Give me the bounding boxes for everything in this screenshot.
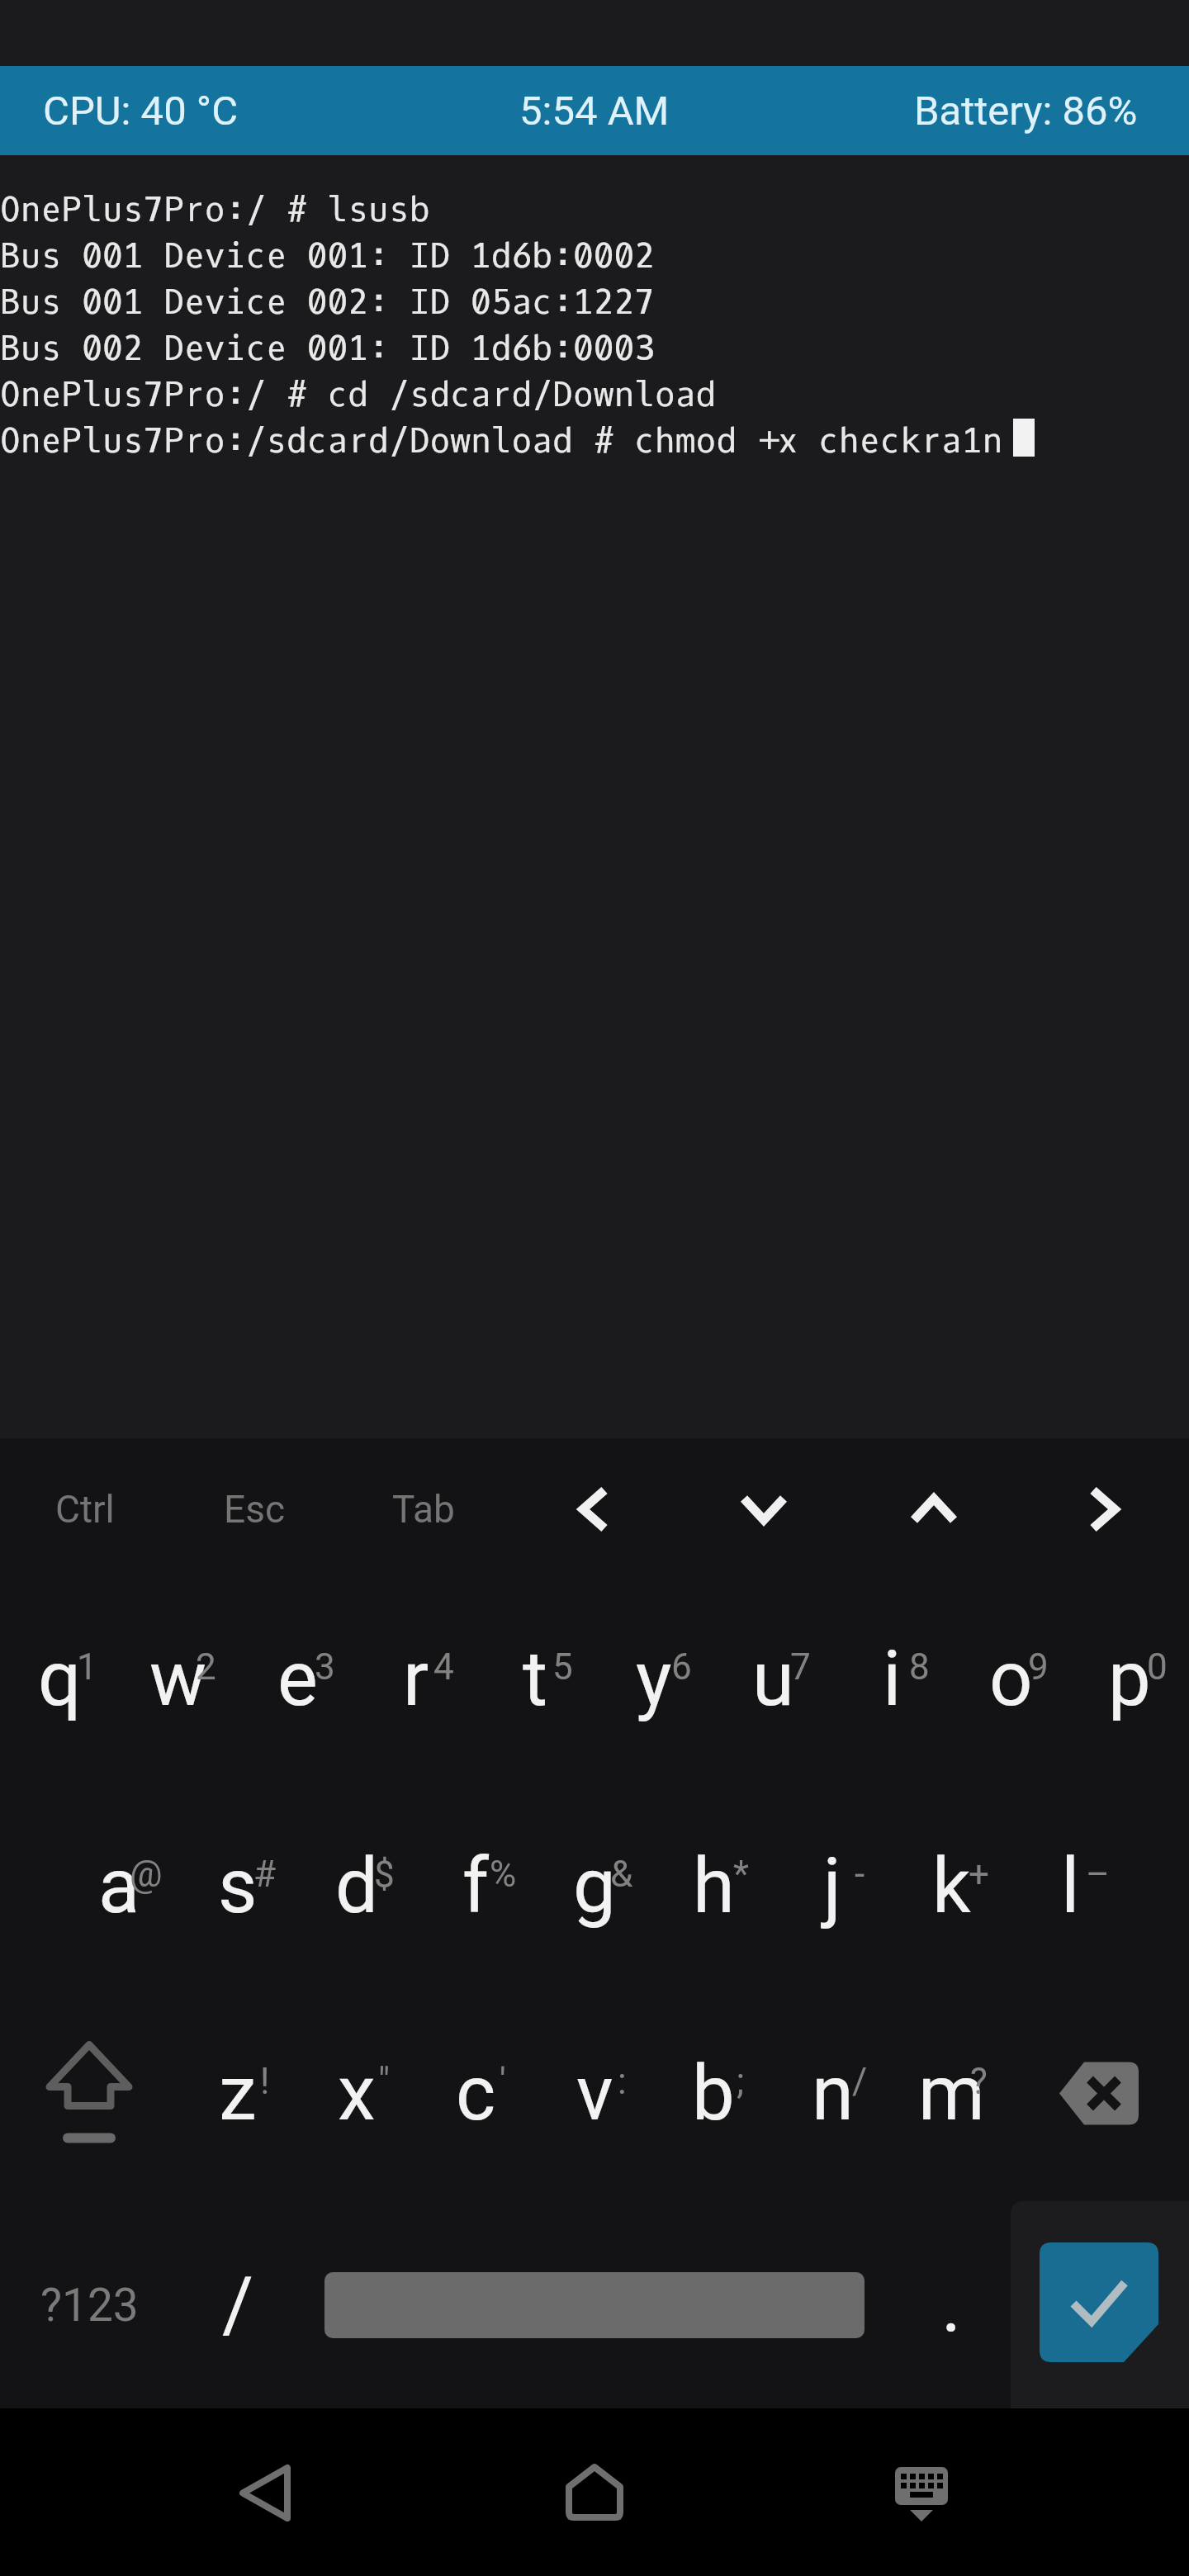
- button[interactable]: p: [1070, 1579, 1189, 1787]
- staticText: m: [918, 2049, 985, 2138]
- button[interactable]: o: [951, 1579, 1070, 1787]
- staticText: ': [500, 2060, 506, 2103]
- staticText: d: [335, 1842, 378, 1931]
- staticText: /: [852, 2060, 868, 2103]
- button[interactable]: q: [0, 1579, 119, 1787]
- staticText: i: [883, 1635, 902, 1724]
- button[interactable]: k: [892, 1787, 1011, 1994]
- staticText: a: [98, 1842, 140, 1931]
- button[interactable]: Ctrl: [0, 1438, 169, 1579]
- staticText: o: [989, 1635, 1033, 1724]
- staticText: 2: [196, 1646, 216, 1688]
- button[interactable]: [1011, 1994, 1189, 2201]
- button[interactable]: [1019, 1438, 1189, 1579]
- button[interactable]: n: [773, 1994, 892, 2201]
- staticText: Tab: [392, 1487, 455, 1532]
- staticText: b: [692, 2049, 735, 2138]
- button[interactable]: h: [654, 1787, 773, 1994]
- staticText: !: [260, 2060, 270, 2103]
- staticText: &: [610, 1853, 633, 1896]
- button[interactable]: [297, 2201, 892, 2408]
- staticText: j: [823, 1842, 842, 1931]
- staticText: l: [1061, 1842, 1080, 1931]
- staticText: s: [218, 1842, 258, 1931]
- staticText: h: [693, 1842, 735, 1931]
- button[interactable]: /: [178, 2201, 297, 2408]
- button[interactable]: b: [654, 1994, 773, 2201]
- button[interactable]: j: [773, 1787, 892, 1994]
- staticText: ?: [970, 2060, 988, 2103]
- staticText: ?123: [40, 2279, 139, 2332]
- button[interactable]: x: [297, 1994, 416, 2201]
- staticText: Esc: [224, 1487, 285, 1532]
- button[interactable]: [893, 2464, 951, 2522]
- staticText: 3: [315, 1646, 335, 1688]
- button[interactable]: u: [713, 1579, 832, 1787]
- button[interactable]: d: [297, 1787, 416, 1994]
- button[interactable]: s: [178, 1787, 297, 1994]
- button[interactable]: Esc: [169, 1438, 339, 1579]
- staticText: :: [618, 2060, 627, 2103]
- staticText: 9: [1028, 1646, 1049, 1688]
- staticText: –: [1086, 1853, 1110, 1896]
- staticText: #: [253, 1853, 277, 1896]
- button[interactable]: e: [238, 1579, 357, 1787]
- staticText: -: [855, 1853, 865, 1896]
- button[interactable]: y: [594, 1579, 713, 1787]
- button[interactable]: m: [892, 1994, 1011, 2201]
- button[interactable]: c: [416, 1994, 535, 2201]
- staticText: u: [752, 1635, 794, 1724]
- button[interactable]: [236, 2464, 294, 2522]
- staticText: z: [219, 2049, 257, 2138]
- staticText: /: [222, 2261, 253, 2350]
- staticText: @: [130, 1853, 163, 1896]
- button[interactable]: [1011, 2201, 1189, 2408]
- staticText: +: [969, 1853, 989, 1896]
- button[interactable]: [679, 1438, 849, 1579]
- button[interactable]: [0, 1994, 178, 2201]
- staticText: f: [462, 1842, 489, 1931]
- button[interactable]: z: [178, 1994, 297, 2201]
- button[interactable]: a: [59, 1787, 178, 1994]
- button[interactable]: i: [832, 1579, 951, 1787]
- button[interactable]: v: [535, 1994, 654, 2201]
- button[interactable]: CPU: 40 °C: [0, 66, 1189, 155]
- staticText: Ctrl: [55, 1487, 115, 1532]
- button[interactable]: f: [416, 1787, 535, 1994]
- staticText: c: [456, 2049, 496, 2138]
- staticText: k: [932, 1842, 971, 1931]
- staticText: 0: [1147, 1646, 1168, 1688]
- staticText: 6: [671, 1646, 692, 1688]
- button[interactable]: r: [357, 1579, 476, 1787]
- staticText: r: [403, 1635, 429, 1724]
- button[interactable]: t: [476, 1579, 594, 1787]
- button[interactable]: [849, 1438, 1019, 1579]
- staticText: x: [338, 2049, 376, 2138]
- staticText: p: [1108, 1635, 1151, 1724]
- button[interactable]: [509, 1438, 679, 1579]
- staticText: v: [576, 2049, 613, 2138]
- staticText: 5: [552, 1646, 573, 1688]
- staticText: 7: [790, 1646, 811, 1688]
- staticText: $: [374, 1853, 395, 1896]
- button[interactable]: Tab: [339, 1438, 509, 1579]
- staticText: q: [38, 1635, 82, 1724]
- button[interactable]: [566, 2464, 623, 2522]
- button[interactable]: l: [1011, 1787, 1130, 1994]
- staticText: CPU: 40 °C: [43, 88, 239, 135]
- staticText: n: [812, 2049, 854, 2138]
- staticText: 5:54 AM: [519, 88, 670, 135]
- staticText: t: [523, 1635, 548, 1724]
- button[interactable]: w: [119, 1579, 238, 1787]
- staticText: e: [277, 1635, 318, 1724]
- staticText: ": [378, 2060, 391, 2103]
- button[interactable]: ?123: [0, 2201, 178, 2408]
- button[interactable]: .: [892, 2201, 1011, 2408]
- staticText: y: [636, 1635, 672, 1724]
- button[interactable]: g: [535, 1787, 654, 1994]
- staticText: %: [490, 1853, 517, 1896]
- staticText: 1: [77, 1646, 97, 1688]
- staticText: 4: [433, 1646, 454, 1688]
- staticText: 8: [909, 1646, 930, 1688]
- staticText: OnePlus7Pro:/ # lsusb Bus 001 Device 001…: [0, 187, 1003, 464]
